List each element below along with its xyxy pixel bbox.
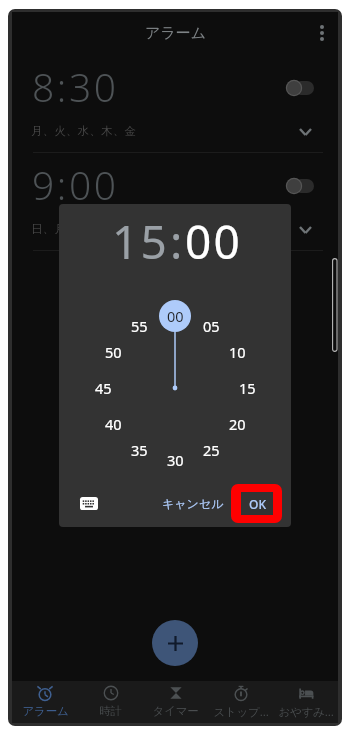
button[interactable]: 50	[97, 336, 129, 368]
staticText: 40	[105, 414, 122, 434]
staticText: 10	[229, 342, 246, 362]
button[interactable]: Expand alarm	[290, 117, 320, 147]
staticText: 月、火、水、木、金	[31, 124, 137, 138]
staticText: 25	[203, 440, 220, 460]
button[interactable]: 40	[97, 408, 129, 440]
button[interactable]: 55	[123, 310, 155, 342]
button[interactable]: 00	[185, 210, 243, 273]
button[interactable]: Switch to text input	[74, 488, 104, 518]
staticText: 00	[167, 306, 184, 326]
button[interactable]: 00	[159, 300, 191, 332]
staticText: 55	[131, 316, 148, 336]
staticText: :	[170, 210, 185, 273]
staticText: 15	[239, 378, 256, 398]
staticText: 05	[203, 316, 220, 336]
staticText: アラーム	[22, 704, 69, 718]
staticText: 35	[131, 440, 148, 460]
button[interactable]: 8:30	[32, 60, 119, 113]
button[interactable]: 15	[112, 210, 170, 273]
staticText: キャンセル	[162, 496, 224, 511]
staticText: 20	[229, 414, 246, 434]
button[interactable]: 45	[87, 372, 119, 404]
staticText: ストップ…	[213, 704, 269, 720]
button[interactable]: 30	[159, 444, 191, 476]
button[interactable]: Expand alarm	[290, 215, 320, 245]
button[interactable]: Add alarm	[152, 620, 198, 666]
staticText: タイマー	[152, 704, 199, 718]
button[interactable]: おやすみ…	[273, 681, 338, 723]
staticText: 50	[105, 342, 122, 362]
button[interactable]: キャンセル	[156, 492, 230, 515]
staticText: おやすみ…	[278, 704, 334, 720]
staticText: アラーム	[145, 24, 207, 43]
staticText: 時計	[99, 704, 122, 718]
button[interactable]: OK	[241, 492, 273, 515]
button[interactable]: Toggle alarm	[282, 73, 322, 103]
button[interactable]: Toggle alarm	[282, 171, 322, 201]
button[interactable]: 10	[221, 336, 253, 368]
button[interactable]: 25	[195, 434, 227, 466]
button[interactable]: タイマー	[143, 681, 208, 723]
button[interactable]: 05	[195, 310, 227, 342]
staticText: 30	[167, 450, 184, 470]
button[interactable]: 15	[231, 372, 263, 404]
button[interactable]: 9:00	[32, 158, 119, 211]
button[interactable]: More options	[306, 17, 338, 49]
button[interactable]: アラーム	[12, 681, 78, 723]
staticText: OK	[249, 496, 266, 512]
staticText: 日、月	[31, 222, 67, 236]
button[interactable]: ストップ…	[208, 681, 273, 723]
button[interactable]: 35	[123, 434, 155, 466]
staticText: 45	[95, 378, 112, 398]
button[interactable]: 20	[221, 408, 253, 440]
button[interactable]: 時計	[78, 681, 143, 723]
